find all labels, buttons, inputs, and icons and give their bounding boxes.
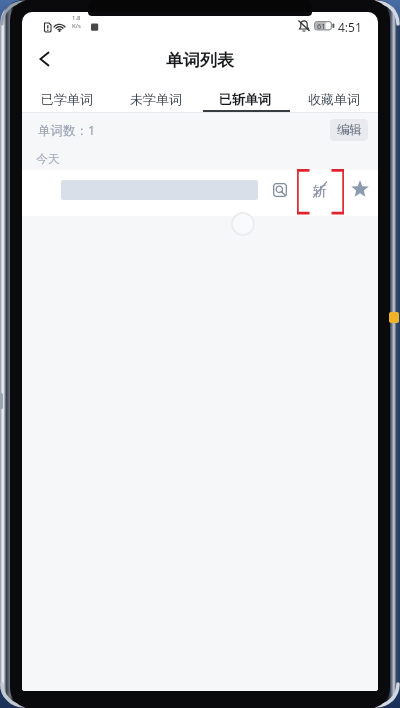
staticText: 今天 [36, 151, 60, 166]
button[interactable]: 编辑 [330, 119, 368, 141]
button[interactable]: 已斩单词 [200, 86, 289, 112]
staticText: 已斩单词 [219, 91, 271, 107]
staticText: 4:51 [338, 19, 362, 35]
staticText: 61 [317, 21, 326, 31]
staticText: K/s [72, 22, 81, 30]
staticText: 单词列表 [22, 50, 378, 71]
staticText: 已学单词 [41, 91, 93, 107]
staticText: 单词数：1 [38, 122, 96, 139]
staticText: 斩 [313, 183, 327, 201]
staticText: 未学单词 [130, 91, 182, 107]
button[interactable] [30, 48, 66, 76]
button[interactable]: 斩 [22, 170, 378, 216]
staticText: 收藏单词 [308, 91, 360, 107]
staticText: 编辑 [337, 122, 362, 138]
button[interactable]: 未学单词 [111, 86, 200, 112]
button[interactable] [269, 179, 292, 202]
button[interactable] [349, 178, 371, 200]
button[interactable]: 斩 [308, 176, 332, 204]
staticText: 1.8 [72, 14, 81, 22]
button[interactable]: 收藏单词 [289, 86, 378, 112]
button[interactable]: 已学单词 [22, 86, 111, 112]
